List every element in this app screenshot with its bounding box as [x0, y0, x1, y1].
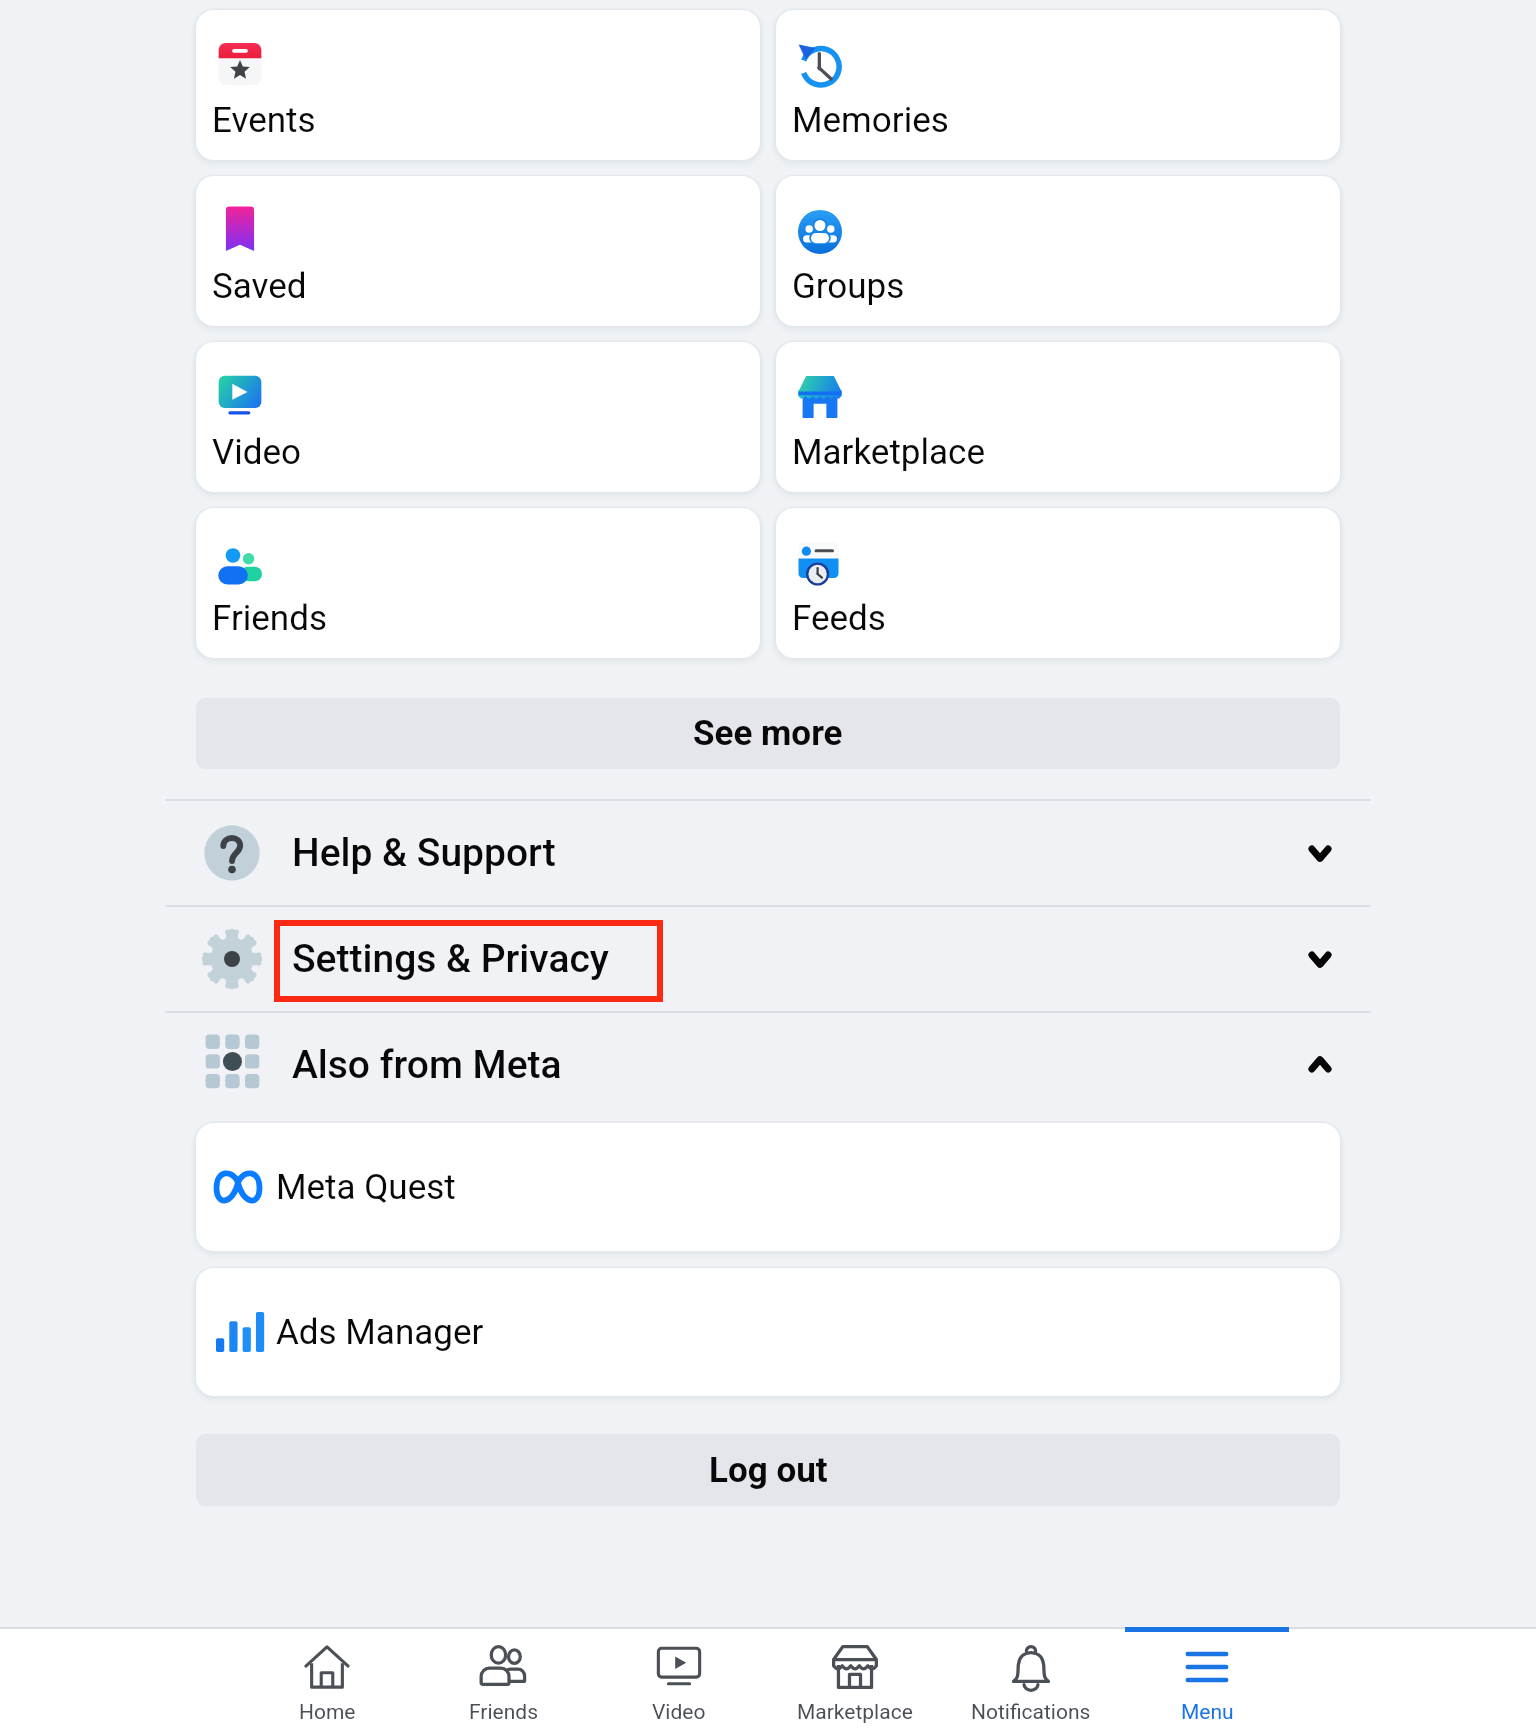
staticText: Video: [652, 1700, 706, 1725]
staticText: See more: [693, 713, 843, 754]
other: Collapse: [1306, 1052, 1334, 1078]
staticText: Help & Support: [292, 830, 556, 876]
button[interactable]: Friends: [415, 1627, 591, 1728]
staticText: Groups: [792, 266, 905, 307]
button[interactable]: Ads Manager: [196, 1268, 1340, 1396]
staticText: Home: [299, 1700, 356, 1725]
staticText: Friends: [212, 598, 327, 639]
button[interactable]: Feeds: [776, 508, 1340, 658]
staticText: Meta Quest: [276, 1167, 456, 1208]
button[interactable]: Video: [591, 1627, 767, 1728]
staticText: Events: [212, 100, 316, 141]
button[interactable]: Home: [239, 1627, 415, 1728]
other: Expand: [1306, 840, 1334, 866]
staticText: Feeds: [792, 598, 886, 639]
button[interactable]: Also from Meta: [0, 1013, 1536, 1117]
other: Expand: [1306, 946, 1334, 972]
staticText: Saved: [212, 266, 307, 307]
button[interactable]: Friends: [196, 508, 760, 658]
button[interactable]: Marketplace: [776, 342, 1340, 492]
button[interactable]: Events: [196, 10, 760, 160]
button[interactable]: Marketplace: [767, 1627, 943, 1728]
button[interactable]: Video: [196, 342, 760, 492]
staticText: Log out: [709, 1450, 828, 1491]
staticText: Also from Meta: [292, 1042, 562, 1088]
button[interactable]: Settings & Privacy: [0, 907, 1536, 1011]
button[interactable]: Menu: [1119, 1627, 1295, 1728]
button[interactable]: Memories: [776, 10, 1340, 160]
button[interactable]: Meta Quest: [196, 1123, 1340, 1251]
button[interactable]: Log out: [196, 1434, 1340, 1506]
button[interactable]: Saved: [196, 176, 760, 326]
staticText: Memories: [792, 100, 949, 141]
staticText: Marketplace: [792, 432, 985, 473]
staticText: Settings & Privacy: [292, 936, 609, 982]
button[interactable]: Help & Support: [0, 801, 1536, 905]
staticText: Notifications: [971, 1700, 1091, 1725]
staticText: Ads Manager: [276, 1312, 484, 1353]
button[interactable]: Groups: [776, 176, 1340, 326]
button[interactable]: See more: [196, 698, 1340, 769]
staticText: Friends: [469, 1700, 538, 1725]
staticText: Menu: [1181, 1700, 1234, 1725]
staticText: Marketplace: [797, 1700, 913, 1725]
staticText: Video: [212, 432, 302, 473]
button[interactable]: Notifications: [943, 1627, 1119, 1728]
